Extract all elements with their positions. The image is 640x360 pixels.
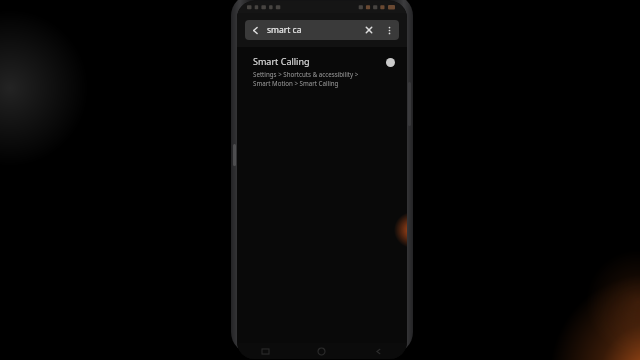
button[interactable]: Back — [350, 343, 407, 359]
button[interactable]: Recents — [237, 343, 293, 359]
button[interactable]: More options — [379, 20, 399, 40]
button[interactable]: Navigate up — [245, 20, 265, 40]
staticText: smart ca — [267, 24, 302, 36]
staticText: Smart Calling — [253, 55, 310, 67]
button[interactable]: Home — [293, 343, 350, 359]
button[interactable]: Clear search — [359, 20, 379, 40]
staticText: Settings > Shortcuts & accessibility > S… — [253, 70, 377, 88]
button[interactable]: Smart Calling — [237, 47, 407, 96]
button[interactable]: Smart Calling toggle — [383, 55, 397, 69]
